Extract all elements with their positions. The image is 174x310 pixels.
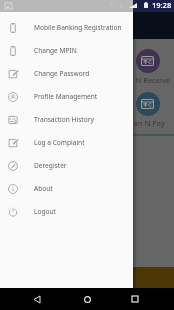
staticText: Change Password (34, 69, 90, 78)
button[interactable]: Change MPIN (0, 39, 133, 62)
button[interactable]: Back (26, 288, 48, 310)
button[interactable]: Logout (0, 200, 133, 223)
button[interactable]: About (0, 177, 133, 200)
staticText: Scan N Receive (117, 75, 170, 85)
staticText: Transaction History (34, 115, 94, 124)
button[interactable]: Deregister (0, 154, 133, 177)
button[interactable]: Scan N Pay (136, 92, 160, 116)
button[interactable]: Profile Management (0, 85, 133, 108)
button[interactable]: Log a Complaint (0, 131, 133, 154)
staticText: 19:28 (152, 0, 172, 10)
button[interactable]: Transaction History (0, 108, 133, 131)
button[interactable]: Home (76, 288, 98, 310)
staticText: About (34, 184, 53, 193)
staticText: E (120, 2, 124, 9)
staticText: pull down to refresh (59, 135, 116, 142)
staticText: Deregister (34, 161, 67, 170)
staticText: Profile Management (34, 92, 98, 101)
button[interactable]: Scan N Receive (136, 49, 160, 73)
staticText: Log a Complaint (34, 138, 85, 147)
button[interactable]: Mobile Banking Registration (0, 16, 133, 39)
staticText: Change MPIN (34, 46, 77, 55)
staticText: Scan N Pay (126, 118, 165, 128)
staticText: Mobile Banking Registration (34, 23, 122, 32)
staticText: Logout (34, 207, 56, 216)
button[interactable]: Recents (124, 288, 146, 310)
button[interactable]: Change Password (0, 62, 133, 85)
